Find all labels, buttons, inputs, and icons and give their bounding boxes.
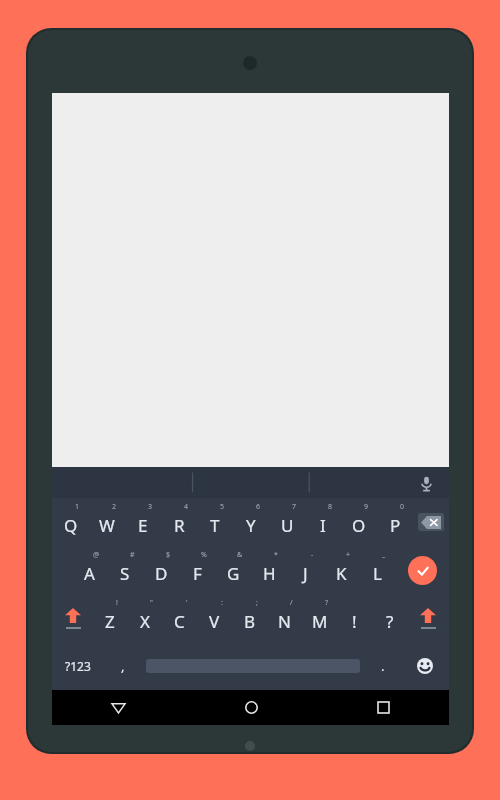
staticText: 1 — [75, 502, 80, 512]
button[interactable]: 8 — [305, 498, 341, 546]
staticText: 9 — [364, 502, 369, 512]
staticText: 8 — [328, 502, 333, 512]
button[interactable]: ! — [337, 594, 372, 642]
staticText: * — [274, 550, 278, 560]
button[interactable]: 5 — [197, 498, 233, 546]
staticText: & — [237, 550, 243, 560]
staticText: C — [174, 610, 185, 633]
button[interactable] — [141, 642, 364, 690]
staticText: D — [155, 562, 168, 585]
button[interactable]: ? — [302, 594, 337, 642]
staticText: O — [352, 514, 366, 537]
button[interactable]: , — [104, 642, 141, 690]
staticText: Z — [105, 610, 115, 633]
staticText: ! — [352, 610, 357, 633]
staticText: # — [130, 550, 135, 560]
button[interactable]: ! — [93, 594, 127, 642]
staticText: Y — [246, 514, 256, 537]
staticText: 6 — [256, 502, 261, 512]
button[interactable]: 6 — [233, 498, 269, 546]
staticText: ? — [325, 598, 329, 608]
button[interactable]: @ — [71, 546, 107, 594]
button[interactable]: Back — [52, 690, 185, 725]
staticText: Q — [64, 514, 78, 537]
button[interactable]: Enter — [395, 546, 449, 594]
button[interactable]: 7 — [269, 498, 305, 546]
staticText: U — [281, 514, 294, 537]
staticText: + — [346, 550, 351, 560]
button[interactable]: & — [215, 546, 251, 594]
button[interactable]: * — [251, 546, 287, 594]
staticText: E — [138, 514, 148, 537]
button[interactable]: 2 — [89, 498, 125, 546]
staticText: 2 — [112, 502, 117, 512]
staticText: H — [263, 562, 276, 585]
staticText: - — [311, 550, 314, 560]
staticText: N — [278, 610, 291, 633]
staticText: W — [99, 514, 115, 537]
button[interactable]: ; — [232, 594, 267, 642]
staticText: ?123 — [65, 658, 91, 674]
button[interactable]: / — [267, 594, 302, 642]
staticText: ! — [116, 598, 118, 608]
staticText: 3 — [148, 502, 153, 512]
staticText: T — [210, 514, 220, 537]
staticText: , — [121, 657, 125, 675]
staticText: 4 — [184, 502, 189, 512]
button[interactable]: Home — [185, 690, 317, 725]
staticText: 5 — [220, 502, 225, 512]
staticText: B — [244, 610, 256, 633]
staticText: R — [174, 514, 185, 537]
button[interactable]: ?123 — [52, 642, 104, 690]
staticText: . — [381, 657, 385, 675]
staticText: J — [303, 562, 308, 585]
staticText: K — [336, 562, 347, 585]
staticText: X — [140, 610, 150, 633]
button[interactable]: # — [107, 546, 143, 594]
staticText: P — [390, 514, 401, 537]
button[interactable]: Backspace — [413, 498, 449, 546]
button[interactable]: - — [287, 546, 323, 594]
button[interactable]: % — [179, 546, 215, 594]
staticText: " — [150, 598, 153, 608]
button[interactable]: 3 — [125, 498, 161, 546]
button[interactable]: : — [197, 594, 232, 642]
staticText: ' — [186, 598, 188, 608]
button[interactable]: _ — [359, 546, 395, 594]
button[interactable]: Shift — [52, 594, 93, 642]
button[interactable]: $ — [143, 546, 179, 594]
button[interactable]: ? — [372, 594, 407, 642]
button[interactable]: Recents — [317, 690, 449, 725]
staticText: / — [290, 598, 293, 608]
staticText: ; — [256, 598, 258, 608]
button[interactable]: 1 — [52, 498, 89, 546]
button[interactable]: Voice input — [413, 470, 439, 496]
staticText: G — [227, 562, 240, 585]
staticText: 0 — [400, 502, 405, 512]
button[interactable]: 0 — [377, 498, 413, 546]
button[interactable]: " — [127, 594, 162, 642]
staticText: I — [320, 514, 326, 537]
button[interactable]: ' — [162, 594, 197, 642]
button[interactable]: . — [364, 642, 401, 690]
staticText: % — [201, 550, 207, 560]
staticText: F — [193, 562, 202, 585]
staticText: $ — [166, 550, 171, 560]
staticText: M — [312, 610, 328, 633]
button[interactable]: 4 — [161, 498, 197, 546]
staticText: : — [221, 598, 223, 608]
button[interactable]: + — [323, 546, 359, 594]
staticText: A — [84, 562, 95, 585]
staticText: L — [373, 562, 382, 585]
staticText: 7 — [292, 502, 297, 512]
staticText: ? — [386, 610, 394, 633]
button[interactable]: 9 — [341, 498, 377, 546]
button[interactable]: Shift — [407, 594, 449, 642]
staticText: V — [209, 610, 220, 633]
staticText: @ — [93, 550, 100, 560]
staticText: _ — [382, 550, 386, 560]
button[interactable]: Emoji — [401, 642, 449, 690]
staticText: S — [120, 562, 130, 585]
